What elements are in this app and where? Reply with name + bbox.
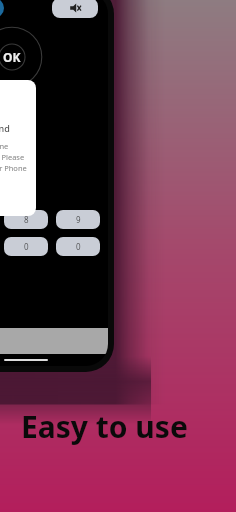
staticText: Blaster Found [0,122,10,134]
staticText: 8 [24,214,29,225]
button[interactable]: Mute [52,0,98,18]
button[interactable]: 8 [4,210,48,229]
staticText: That Your Phone Has IR Sensor, Please Se… [0,141,27,184]
button[interactable]: 9 [56,210,100,229]
staticText: 0 [24,241,29,252]
staticText: 9 [76,214,81,225]
button[interactable]: 0 [4,237,48,256]
staticText: Easy to use [21,406,188,447]
staticText: 0 [76,241,81,252]
staticText: OK [3,49,21,65]
button[interactable]: 0 [56,237,100,256]
button[interactable]: VOL+ [0,0,4,18]
